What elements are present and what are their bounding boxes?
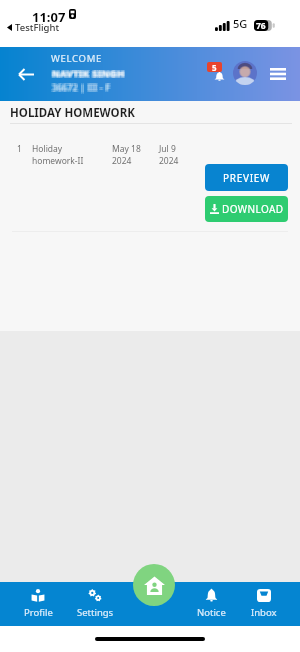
- staticText: NAVTIK SINGH: [53, 66, 126, 79]
- staticText: 5G: [233, 16, 248, 31]
- staticText: HOLIDAY HOMEWORK: [10, 105, 135, 121]
- button[interactable]: Profile: [10, 582, 66, 626]
- staticText: 36672 | III - F: [51, 81, 110, 93]
- button[interactable]: PREVIEW: [205, 164, 288, 191]
- staticText: NAVTIK SINGH: [53, 66, 126, 79]
- staticText: 36672 | III - F: [51, 81, 110, 93]
- staticText: NAVTIK SINGH: [51, 66, 124, 79]
- staticText: NAVTIK SINGH: [51, 66, 124, 79]
- staticText: Settings: [77, 606, 114, 619]
- staticText: NAVTIK SINGH: [51, 68, 124, 81]
- staticText: Profile: [24, 606, 53, 619]
- button[interactable]: Back: [10, 58, 42, 90]
- staticText: NAVTIK SINGH: [51, 67, 124, 80]
- staticText: Inbox: [251, 606, 277, 619]
- button[interactable]: Settings: [67, 582, 123, 626]
- staticText: NAVTIK SINGH: [52, 66, 125, 79]
- staticText: 36672 | III - F: [53, 81, 112, 93]
- staticText: 36672 | III - F: [52, 82, 111, 94]
- staticText: NAVTIK SINGH: [53, 67, 126, 80]
- staticText: WELCOME: [51, 52, 102, 65]
- staticText: NAVTIK SINGH: [52, 67, 125, 80]
- staticText: 1: [17, 143, 22, 155]
- staticText: 36672 | III - F: [51, 83, 110, 95]
- staticText: NAVTIK SINGH: [53, 68, 126, 81]
- staticText: 36672 | III - F: [51, 83, 110, 95]
- button[interactable]: Notice: [183, 582, 239, 626]
- button[interactable]: Profile: [233, 61, 257, 85]
- button[interactable]: DOWNLOAD: [205, 196, 288, 222]
- staticText: 36672 | III - F: [53, 83, 112, 95]
- staticText: Notice: [197, 606, 226, 619]
- staticText: 36672 | III - F: [53, 82, 112, 94]
- staticText: TestFlight: [15, 21, 60, 34]
- staticText: DOWNLOAD: [222, 202, 284, 216]
- staticText: Holiday homework-II: [32, 143, 84, 167]
- button[interactable]: Home: [133, 564, 175, 606]
- staticText: PREVIEW: [223, 171, 270, 185]
- staticText: NAVTIK SINGH: [52, 68, 125, 81]
- staticText: NAVTIK SINGH: [51, 68, 124, 81]
- staticText: 36672 | III - F: [51, 82, 110, 94]
- staticText: May 18 2024: [112, 143, 141, 167]
- button[interactable]: Notifications: [205, 60, 227, 86]
- button[interactable]: Menu: [265, 61, 291, 87]
- staticText: 5: [212, 62, 217, 72]
- staticText: 36672 | III - F: [53, 83, 112, 95]
- staticText: 76: [256, 20, 266, 31]
- button[interactable]: Inbox: [236, 582, 292, 626]
- staticText: 36672 | III - F: [53, 81, 112, 93]
- staticText: 11:07: [32, 8, 66, 26]
- staticText: 36672 | III - F: [52, 81, 111, 93]
- staticText: Jul 9 2024: [159, 143, 179, 167]
- staticText: NAVTIK SINGH: [53, 68, 126, 81]
- staticText: 36672 | III - F: [52, 83, 111, 95]
